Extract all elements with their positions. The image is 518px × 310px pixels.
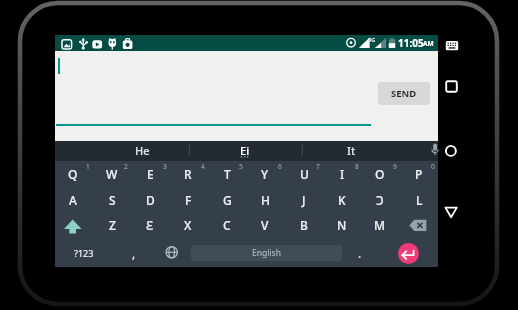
staticText: 2 <box>124 162 128 171</box>
button[interactable]: H <box>246 188 284 212</box>
staticText: 3G <box>368 36 376 43</box>
button[interactable] <box>398 243 419 264</box>
button[interactable]: It <box>311 139 391 161</box>
staticText: 5 <box>239 162 243 171</box>
button[interactable]: P <box>400 162 438 186</box>
button[interactable]: S <box>93 188 131 212</box>
staticText: AM <box>423 39 434 48</box>
button[interactable]: Ɛ <box>131 213 169 237</box>
button[interactable]: W <box>93 162 131 186</box>
staticText: . <box>358 245 362 261</box>
staticText: Ei <box>240 143 250 158</box>
staticText: J <box>302 192 306 208</box>
staticText: A <box>69 192 77 208</box>
button[interactable]: K <box>323 188 361 212</box>
button[interactable]: J <box>285 188 323 212</box>
staticText: 9 <box>393 162 397 171</box>
button[interactable]: English <box>191 245 342 261</box>
button[interactable]: ?123 <box>62 244 106 262</box>
staticText: B <box>300 217 308 233</box>
staticText: I <box>340 166 345 182</box>
staticText: 6 <box>278 162 282 171</box>
button[interactable]: T <box>208 162 246 186</box>
button[interactable]: Ɔ <box>361 188 399 212</box>
button[interactable]: M <box>361 213 399 237</box>
staticText: 11:05 <box>398 36 424 50</box>
staticText: O <box>375 166 385 182</box>
button[interactable]: I <box>323 162 361 186</box>
staticText: X <box>184 217 192 233</box>
button[interactable]: G <box>208 188 246 212</box>
button[interactable]: A <box>54 188 92 212</box>
staticText: R <box>184 166 192 182</box>
button[interactable]: He <box>102 139 182 161</box>
staticText: F <box>185 192 192 208</box>
staticText: Y <box>261 166 269 182</box>
staticText: T <box>224 166 231 182</box>
button[interactable]: X <box>169 213 207 237</box>
staticText: 4 <box>201 162 205 171</box>
button[interactable]: N <box>323 213 361 237</box>
staticText: H <box>261 192 270 208</box>
button[interactable]: U <box>285 162 323 186</box>
button[interactable]: E <box>131 162 169 186</box>
button[interactable]: Ei <box>205 139 285 161</box>
button[interactable]: D <box>131 188 169 212</box>
button[interactable]: Y <box>246 162 284 186</box>
staticText: 0 <box>431 162 435 171</box>
staticText: 7 <box>316 162 320 171</box>
staticText: E <box>147 166 154 182</box>
staticText: Ɔ <box>376 192 384 208</box>
staticText: 3 <box>163 162 167 171</box>
staticText: G <box>223 192 232 208</box>
button[interactable]: O <box>361 162 399 186</box>
staticText: S <box>109 192 116 208</box>
staticText: 8 <box>355 162 359 171</box>
staticText: M <box>374 217 386 233</box>
button[interactable]: Q <box>54 162 92 186</box>
staticText: Z <box>109 217 116 233</box>
staticText: C <box>223 217 231 233</box>
staticText: It <box>347 143 356 158</box>
staticText: W <box>106 166 118 182</box>
staticText: V <box>261 217 269 233</box>
button[interactable]: L <box>400 188 438 212</box>
button[interactable]: V <box>246 213 284 237</box>
staticText: ?123 <box>74 247 94 259</box>
button[interactable]: C <box>208 213 246 237</box>
button[interactable]: , <box>119 241 149 265</box>
staticText: Ɛ <box>146 217 154 233</box>
staticText: English <box>252 247 281 259</box>
staticText: , <box>132 245 136 261</box>
staticText: SEND <box>391 87 417 100</box>
staticText: Q <box>68 166 78 182</box>
button[interactable]: R <box>169 162 207 186</box>
button[interactable]: SEND <box>378 82 430 105</box>
staticText: K <box>338 192 346 208</box>
button[interactable]: . <box>345 241 375 265</box>
button[interactable]: B <box>285 213 323 237</box>
staticText: D <box>146 192 155 208</box>
staticText: L <box>416 192 423 208</box>
staticText: 1 <box>86 162 90 171</box>
staticText: He <box>135 143 150 158</box>
staticText: U <box>300 166 309 182</box>
button[interactable]: F <box>169 188 207 212</box>
staticText: P <box>415 166 423 182</box>
button[interactable]: Z <box>93 213 131 237</box>
staticText: N <box>337 217 347 233</box>
